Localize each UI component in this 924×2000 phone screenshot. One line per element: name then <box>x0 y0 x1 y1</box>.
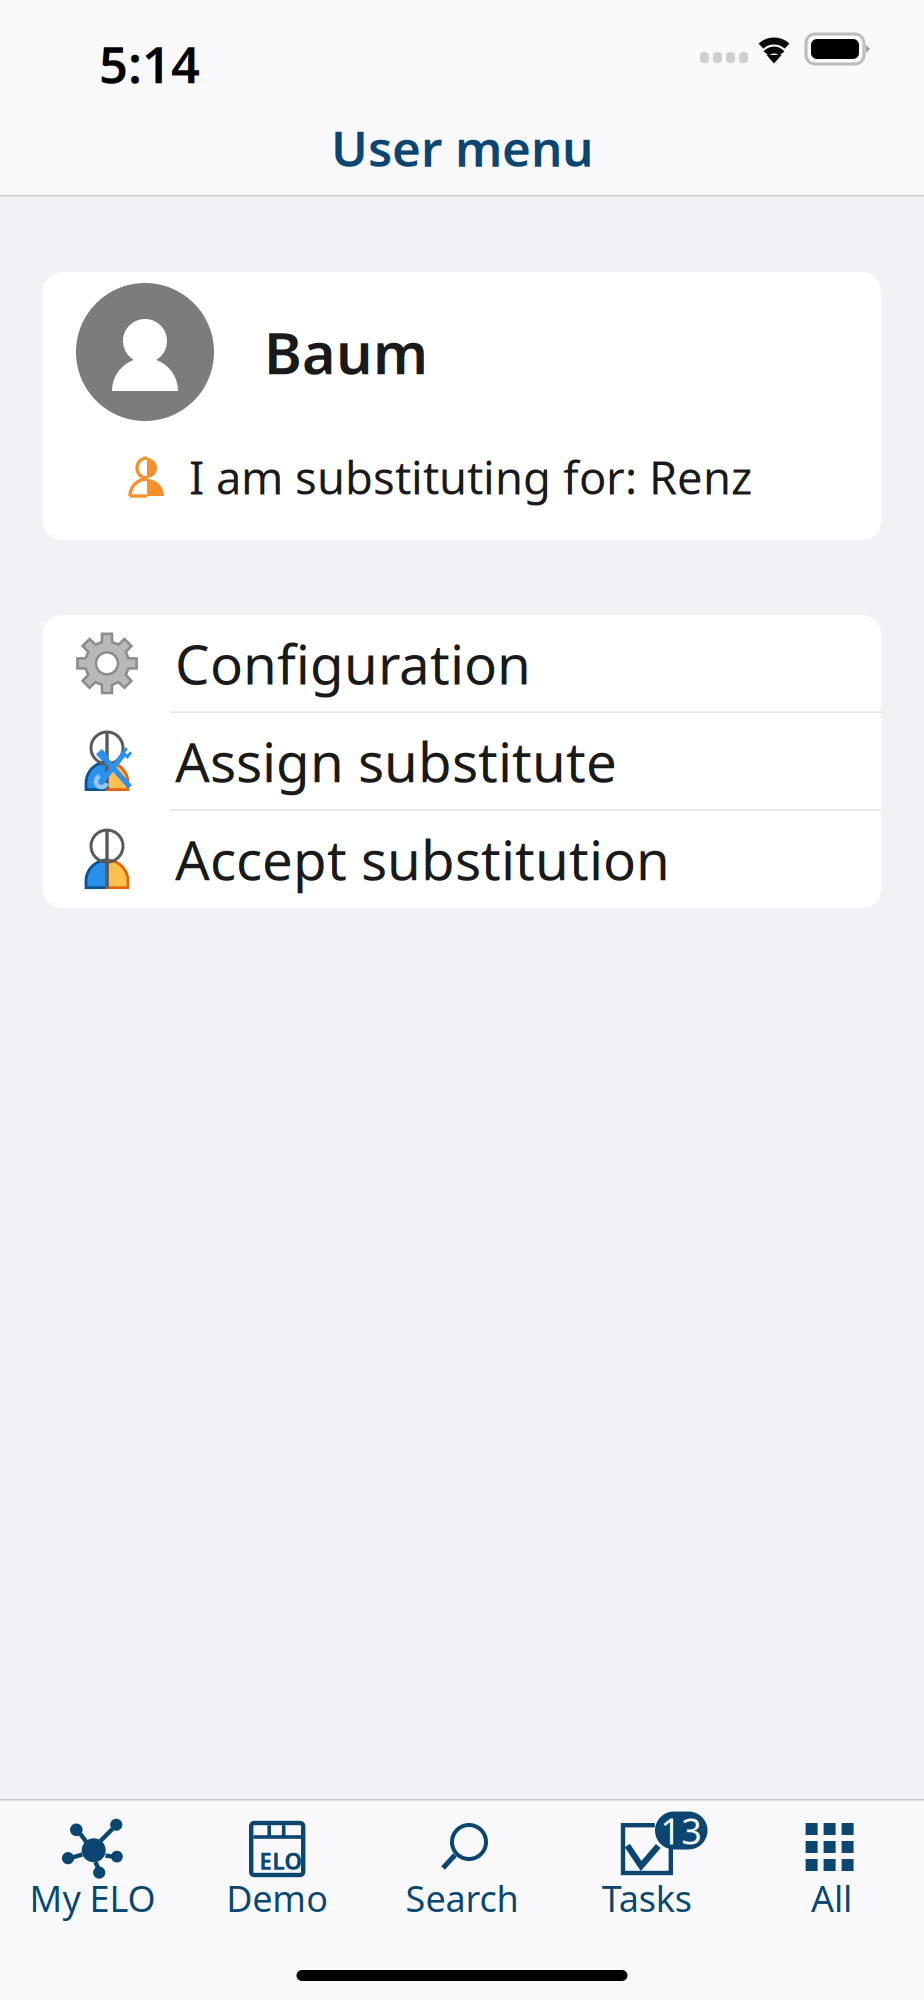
staticText: 5:14 <box>99 30 200 97</box>
button[interactable]: ELO <box>185 1799 370 2000</box>
button[interactable]: Configuration <box>43 615 881 713</box>
staticText: Demo <box>226 1874 328 1922</box>
staticText: Tasks <box>602 1874 692 1922</box>
button[interactable]: My ELO <box>0 1799 185 2000</box>
staticText: User menu <box>331 115 593 180</box>
staticText: Assign substitute <box>175 725 617 797</box>
button[interactable]: Assign substitute <box>43 713 881 811</box>
button[interactable]: All <box>739 1799 924 2000</box>
staticText: My ELO <box>29 1874 155 1922</box>
staticText: Accept substitution <box>175 823 670 895</box>
staticText: Configuration <box>175 627 531 700</box>
staticText: I am substituting for: Renz <box>189 447 752 507</box>
staticText: Search <box>405 1874 518 1922</box>
button[interactable]: Search <box>370 1799 554 2000</box>
staticText: 13 <box>660 1807 702 1854</box>
staticText: All <box>811 1874 852 1922</box>
staticText: ELO <box>259 1846 302 1876</box>
button[interactable]: 13 <box>554 1799 739 2000</box>
staticText: Baum <box>264 314 428 390</box>
button[interactable]: Accept substitution <box>43 811 881 908</box>
